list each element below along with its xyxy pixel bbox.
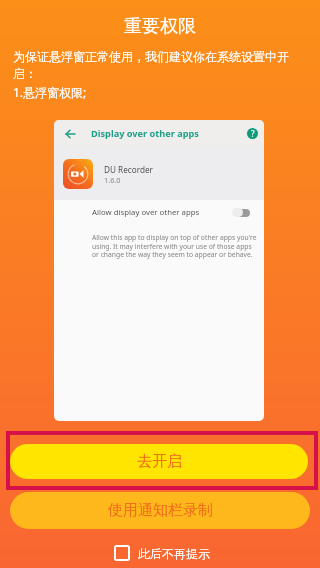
staticText: DU Recorder <box>104 164 153 175</box>
button[interactable]: 使用通知栏录制 <box>10 492 310 529</box>
button[interactable]: 去开启 <box>10 444 308 479</box>
staticText: Allow display over other apps <box>92 207 200 218</box>
staticText: 重要权限 <box>0 15 320 38</box>
staticText: ? <box>251 128 255 139</box>
staticText: 去开启 <box>137 452 182 471</box>
staticText: 此后不再提示 <box>138 546 210 561</box>
button[interactable]: Back <box>65 129 75 139</box>
staticText: Allow this app to display on top of othe… <box>92 233 264 259</box>
button[interactable]: Allow display over other apps <box>54 200 264 233</box>
staticText: 为保证悬浮窗正常使用，我们建议你在系统设置中开启： 1.悬浮窗权限; <box>13 49 309 100</box>
button[interactable]: 此后不再提示 <box>114 545 210 561</box>
staticText: 使用通知栏录制 <box>108 501 213 520</box>
staticText: 1.6.0 <box>104 175 121 185</box>
staticText: Display over other apps <box>91 127 199 140</box>
button[interactable]: Help <box>242 123 263 144</box>
